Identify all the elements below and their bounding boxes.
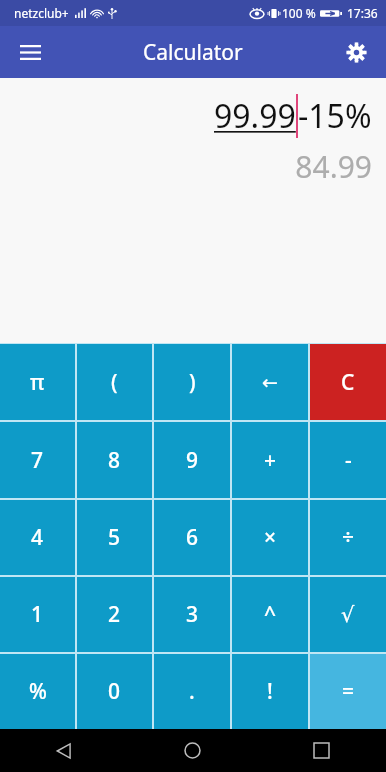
staticText: 7: [31, 446, 44, 475]
staticText: 9: [186, 446, 199, 475]
staticText: 6: [186, 523, 199, 552]
button[interactable]: ×: [232, 500, 308, 575]
staticText: ): [189, 368, 196, 397]
button[interactable]: C: [310, 344, 386, 420]
button[interactable]: Recent apps: [257, 729, 386, 772]
button[interactable]: Backspace: [232, 344, 308, 420]
staticText: ←: [262, 371, 278, 393]
staticText: π: [30, 368, 45, 397]
button[interactable]: 6: [154, 500, 230, 575]
staticText: netzclub+: [14, 5, 69, 21]
button[interactable]: 3: [154, 577, 230, 652]
button[interactable]: ^: [232, 577, 308, 652]
staticText: 0: [108, 677, 121, 706]
button[interactable]: 4: [0, 500, 75, 575]
button[interactable]: !: [232, 654, 308, 729]
button[interactable]: π: [0, 344, 75, 420]
button[interactable]: =: [310, 654, 386, 729]
button[interactable]: 1: [0, 577, 75, 652]
staticText: %: [29, 677, 47, 706]
staticText: -: [345, 446, 352, 475]
staticText: Calculator: [143, 38, 243, 67]
staticText: 17:36: [347, 5, 378, 21]
button[interactable]: Open navigation menu: [8, 30, 52, 74]
staticText: 1: [31, 600, 44, 629]
button[interactable]: Settings: [334, 30, 378, 74]
button[interactable]: ÷: [310, 500, 386, 575]
button[interactable]: -: [310, 422, 386, 498]
button[interactable]: 0: [77, 654, 152, 729]
staticText: C: [341, 368, 355, 397]
button[interactable]: 9: [154, 422, 230, 498]
button[interactable]: %: [0, 654, 75, 729]
button[interactable]: (: [77, 344, 152, 420]
staticText: 8: [108, 446, 121, 475]
button[interactable]: +: [232, 422, 308, 498]
staticText: 4: [31, 523, 44, 552]
staticText: ×: [264, 523, 277, 552]
button[interactable]: Back: [0, 729, 128, 772]
staticText: ÷: [342, 523, 355, 552]
staticText: +: [264, 446, 277, 475]
staticText: !: [267, 677, 273, 706]
staticText: -15%: [298, 94, 372, 138]
button[interactable]: .: [154, 654, 230, 729]
staticText: 99.99: [214, 94, 296, 138]
staticText: 3: [186, 600, 199, 629]
staticText: =: [342, 677, 355, 706]
button[interactable]: 7: [0, 422, 75, 498]
button[interactable]: ): [154, 344, 230, 420]
staticText: (: [111, 368, 118, 397]
staticText: 84.99: [295, 146, 372, 187]
staticText: .: [189, 677, 195, 706]
button[interactable]: 5: [77, 500, 152, 575]
button[interactable]: Home: [128, 729, 257, 772]
staticText: ^: [264, 600, 277, 629]
staticText: √: [341, 603, 355, 627]
button[interactable]: 8: [77, 422, 152, 498]
button[interactable]: √: [310, 577, 386, 652]
staticText: 2: [108, 600, 121, 629]
staticText: 100 %: [282, 5, 316, 21]
button[interactable]: 2: [77, 577, 152, 652]
staticText: 5: [108, 523, 121, 552]
